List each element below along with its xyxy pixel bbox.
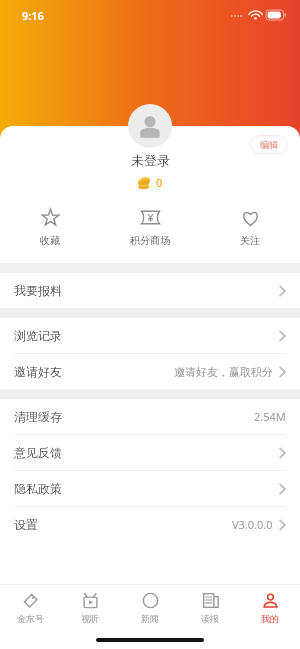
staticText: 我的: [261, 613, 279, 624]
staticText: 金东号: [17, 613, 44, 624]
staticText: 视听: [81, 613, 99, 624]
staticText: 邀请好友，赢取积分: [174, 365, 273, 379]
staticText: 9:16: [22, 8, 44, 23]
button[interactable]: 我要报料: [0, 273, 300, 308]
staticText: 新闻: [141, 613, 159, 624]
button[interactable]: 隐私政策: [0, 471, 300, 506]
button[interactable]: 收藏: [0, 206, 100, 249]
button[interactable]: 新闻: [120, 585, 180, 631]
button[interactable]: 意见反馈: [0, 435, 300, 470]
staticText: 意见反馈: [14, 445, 62, 460]
button[interactable]: 视听: [60, 585, 120, 631]
staticText: 未登录: [131, 152, 170, 168]
staticText: 清理缓存: [14, 409, 62, 424]
staticText: 关注: [240, 234, 260, 247]
button[interactable]: 关注: [200, 206, 300, 249]
staticText: 2.54M: [254, 409, 286, 424]
button[interactable]: 我的: [240, 585, 300, 631]
button[interactable]: 邀请好友: [0, 354, 300, 389]
button[interactable]: 编辑: [250, 135, 288, 154]
staticText: 0: [156, 175, 163, 190]
staticText: 读报: [201, 613, 219, 624]
staticText: 邀请好友: [14, 364, 62, 379]
button[interactable]: 浏览记录: [0, 318, 300, 353]
staticText: 编辑: [260, 139, 278, 150]
staticText: V3.0.0.0: [232, 517, 273, 532]
button[interactable]: 清理缓存: [0, 399, 300, 434]
button[interactable]: Avatar: [128, 104, 172, 148]
button[interactable]: 积分商场: [100, 206, 200, 249]
staticText: 我要报料: [14, 283, 62, 298]
button[interactable]: 设置: [0, 507, 300, 542]
staticText: 隐私政策: [14, 481, 62, 496]
staticText: 浏览记录: [14, 328, 62, 343]
staticText: 积分商场: [130, 234, 170, 247]
button[interactable]: 读报: [180, 585, 240, 631]
staticText: 设置: [14, 517, 38, 532]
staticText: 收藏: [40, 234, 60, 247]
button[interactable]: 金东号: [0, 585, 60, 631]
